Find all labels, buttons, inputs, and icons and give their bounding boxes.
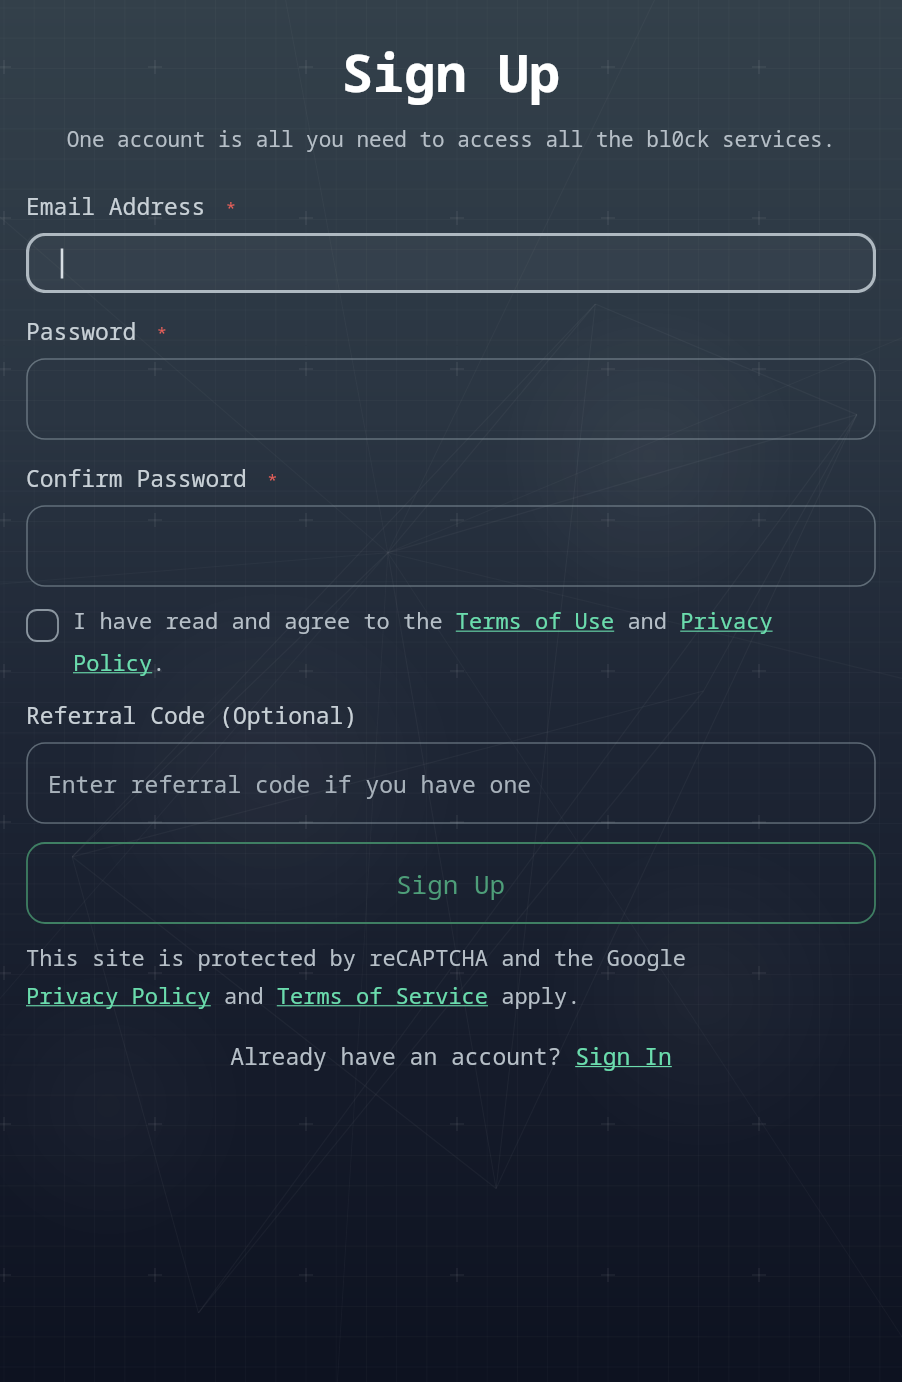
staticText: Sign Up [396, 866, 506, 901]
other: Agree to terms checkbox [26, 609, 59, 642]
button[interactable] [26, 233, 876, 293]
staticText: Referral Code (Optional) [26, 699, 358, 730]
staticText: Sign Up [26, 36, 876, 107]
button[interactable]: Enter referral code if you have one [26, 742, 876, 824]
button[interactable] [26, 358, 876, 440]
button[interactable]: Already have an account? Sign In [230, 1040, 672, 1071]
staticText: I have read and agree to the Terms of Us… [73, 605, 876, 677]
staticText: One account is all you need to access al… [28, 125, 874, 154]
staticText: Password * [26, 315, 167, 346]
button[interactable]: Sign Up [26, 842, 876, 924]
button[interactable] [26, 505, 876, 587]
staticText: Confirm Password * [26, 462, 278, 493]
staticText: Email Address * [26, 190, 236, 221]
button[interactable]: This site is protected by reCAPTCHA and … [26, 942, 876, 1010]
button[interactable]: Agree to terms checkbox [26, 605, 876, 677]
staticText: Enter referral code if you have one [48, 768, 531, 799]
